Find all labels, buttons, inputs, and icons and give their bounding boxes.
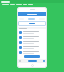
button[interactable] xyxy=(18,40,46,44)
button[interactable] xyxy=(18,30,46,34)
button[interactable] xyxy=(18,45,46,49)
button[interactable]: Logo xyxy=(1,1,10,3)
button[interactable]: Menu item xyxy=(23,4,27,5)
button[interactable]: Home button xyxy=(31,64,34,67)
button[interactable] xyxy=(18,50,46,54)
button[interactable] xyxy=(18,35,46,39)
button[interactable] xyxy=(18,12,46,16)
button[interactable]: Compose xyxy=(28,60,37,62)
button[interactable] xyxy=(24,55,40,58)
button[interactable]: Menu item xyxy=(28,4,33,5)
button[interactable]: Menu item xyxy=(2,4,9,5)
button[interactable]: Tab two xyxy=(28,18,35,20)
button[interactable] xyxy=(18,21,46,26)
button[interactable]: Menu item xyxy=(16,4,22,5)
button[interactable]: Menu item xyxy=(10,4,15,5)
